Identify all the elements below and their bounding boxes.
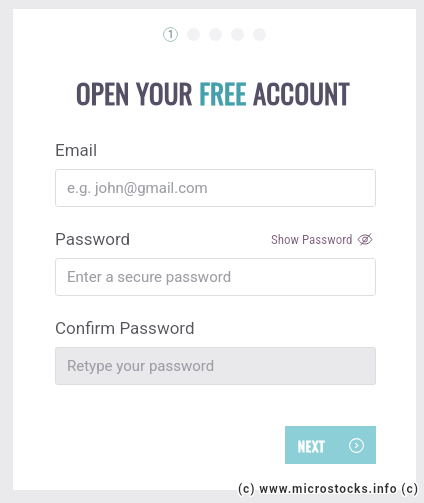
staticText: Email: [55, 140, 98, 160]
other: Show Password: [357, 232, 373, 247]
button[interactable]: e.g. john@gmail.com: [55, 169, 376, 207]
staticText: Enter a secure password: [67, 268, 232, 286]
button[interactable]: NEXT: [285, 426, 376, 464]
staticText: (c) www.microstocks.info (c): [237, 482, 418, 496]
staticText: NEXT: [298, 436, 326, 455]
staticText: 1: [168, 29, 174, 41]
staticText: OPEN YOUR FREE ACCOUNT: [76, 73, 350, 113]
staticText: (c) www.microstocks.info (c): [238, 483, 419, 497]
staticText: (c) www.microstocks.info (c): [239, 481, 420, 495]
staticText: e.g. john@gmail.com: [67, 179, 208, 197]
button[interactable]: Enter a secure password: [55, 258, 376, 296]
staticText: Show Password: [271, 232, 353, 247]
staticText: (c) www.microstocks.info (c): [238, 481, 419, 495]
button[interactable]: [253, 28, 266, 41]
staticText: Confirm Password: [55, 318, 195, 338]
staticText: (c) www.microstocks.info (c): [239, 482, 420, 496]
button[interactable]: Retype your password: [55, 347, 376, 385]
staticText: Password: [55, 229, 131, 249]
button[interactable]: 1: [163, 27, 178, 42]
staticText: (c) www.microstocks.info (c): [238, 482, 419, 496]
button[interactable]: [231, 28, 244, 41]
staticText: (c) www.microstocks.info (c): [237, 481, 418, 495]
staticText: (c) www.microstocks.info (c): [239, 483, 420, 497]
button[interactable]: [209, 28, 222, 41]
button[interactable]: [187, 28, 200, 41]
button[interactable]: Show Password: [271, 232, 376, 247]
staticText: Retype your password: [67, 357, 215, 375]
staticText: (c) www.microstocks.info (c): [237, 483, 418, 497]
